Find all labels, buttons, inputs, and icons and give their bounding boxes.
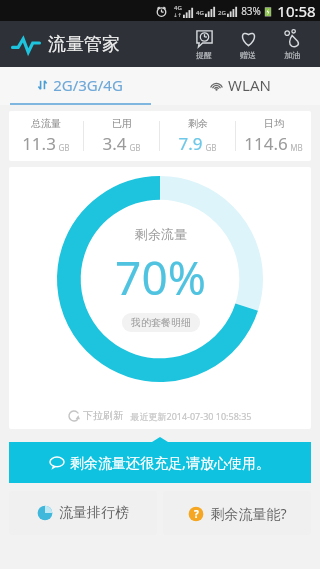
staticText: 114.6: [244, 132, 288, 155]
staticText: 10:58: [277, 1, 316, 21]
staticText: 83%: [241, 4, 261, 18]
staticText: MB: [290, 142, 303, 153]
staticText: GB: [205, 142, 217, 153]
staticText: 3.4: [102, 132, 127, 155]
staticText: 日均: [264, 117, 284, 130]
button[interactable]: 加油: [270, 21, 314, 67]
button[interactable]: WLAN: [160, 67, 320, 103]
staticText: 剩余: [188, 117, 208, 130]
staticText: 剩余流量还很充足,请放心使用。: [70, 453, 270, 472]
staticText: 已用: [112, 117, 132, 130]
button[interactable]: 提醒: [182, 21, 226, 67]
staticText: 下拉刷新: [83, 409, 123, 422]
button[interactable]: 我的套餐明细: [122, 313, 200, 332]
staticText: 剩余流量能?: [210, 504, 287, 523]
staticText: 流量管家: [48, 33, 120, 56]
staticText: 提醒: [196, 50, 212, 60]
staticText: 最近更新2014-07-30 10:58:35: [130, 410, 252, 422]
staticText: 2G: [218, 9, 226, 17]
staticText: 总流量: [31, 117, 61, 130]
staticText: 11.3: [22, 132, 56, 155]
staticText: WLAN: [228, 75, 271, 95]
staticText: 2G/3G/4G: [53, 75, 123, 95]
staticText: 7.9: [178, 132, 203, 155]
staticText: GB: [58, 142, 70, 153]
staticText: 剩余流量: [135, 226, 187, 242]
staticText: 加油: [284, 50, 300, 60]
staticText: 4G: [196, 9, 204, 17]
staticText: 赠送: [240, 50, 256, 60]
button[interactable]: ?: [163, 491, 311, 535]
staticText: GB: [129, 142, 141, 153]
staticText: ?: [194, 507, 199, 521]
staticText: 我的套餐明细: [131, 316, 191, 329]
staticText: ↓↑: [173, 12, 182, 18]
button[interactable]: 流量排行榜: [9, 491, 157, 535]
staticText: 流量排行榜: [59, 504, 129, 522]
button[interactable]: 下拉刷新: [68, 409, 252, 422]
button[interactable]: 2G/3G/4G: [0, 67, 160, 103]
staticText: 70%: [115, 246, 206, 309]
staticText: 4G: [174, 4, 182, 12]
button[interactable]: 赠送: [226, 21, 270, 67]
